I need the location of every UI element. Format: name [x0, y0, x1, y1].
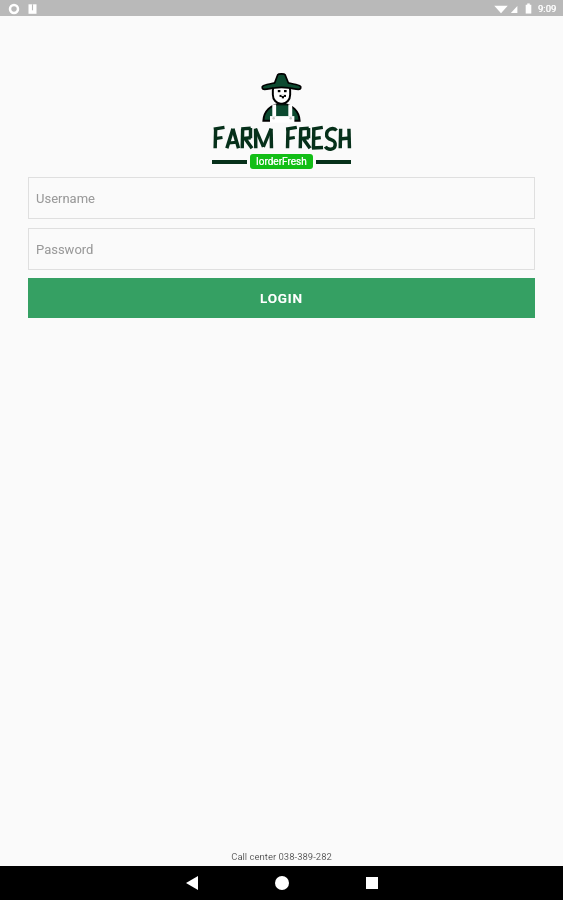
- staticText: Call center 038-389-282: [0, 851, 563, 862]
- button[interactable]: Password: [28, 228, 535, 270]
- button[interactable]: Username: [28, 177, 535, 219]
- button[interactable]: Back: [164, 866, 220, 900]
- button[interactable]: Recent apps: [344, 866, 400, 900]
- staticText: Username: [36, 191, 95, 206]
- button[interactable]: LOGIN: [28, 278, 535, 318]
- staticText: LOGIN: [260, 290, 303, 306]
- button[interactable]: Home: [254, 866, 310, 900]
- staticText: Password: [36, 242, 94, 257]
- staticText: IorderFresh: [256, 156, 307, 168]
- staticText: 9:09: [538, 3, 557, 14]
